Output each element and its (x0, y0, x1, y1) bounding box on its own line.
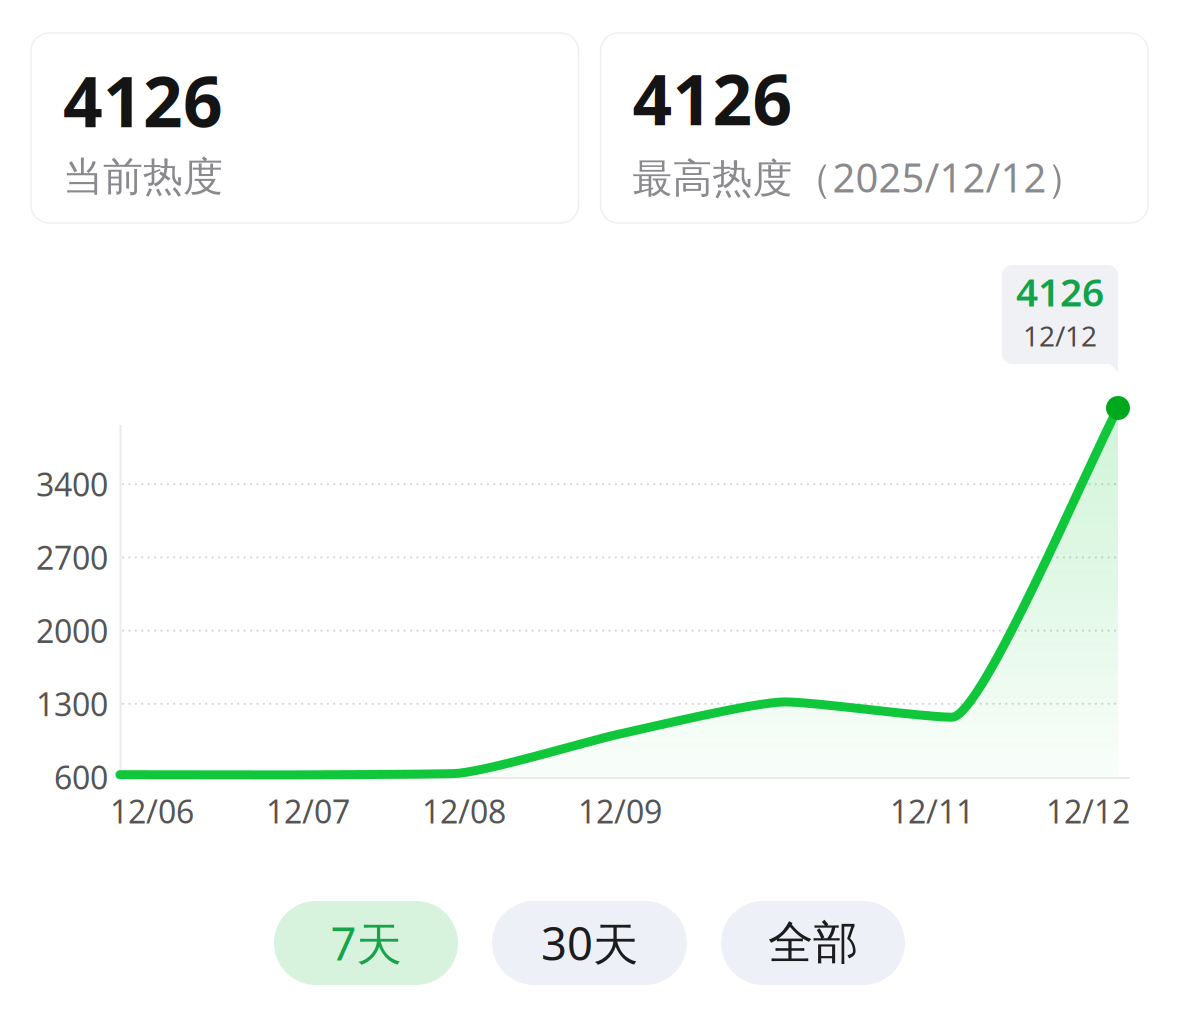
staticText: 最高热度（2025/12/12） (632, 150, 1086, 204)
staticText: 600 (54, 756, 108, 798)
staticText: 30天 (541, 913, 638, 973)
staticText: 3400 (36, 463, 108, 505)
staticText: 12/07 (266, 790, 350, 832)
staticText: 4126 (1016, 266, 1104, 317)
staticText: 全部 (768, 915, 858, 971)
staticText: 当前热度 (63, 152, 223, 202)
button[interactable]: 7天 (274, 901, 458, 985)
staticText: 4126 (632, 52, 792, 144)
staticText: 12/11 (890, 790, 974, 832)
staticText: 1300 (36, 683, 108, 725)
staticText: 12/08 (422, 790, 506, 832)
staticText: 12/12 (1046, 790, 1130, 832)
staticText: 12/12 (1023, 317, 1097, 354)
staticText: 2000 (36, 609, 108, 652)
button[interactable]: 30天 (492, 901, 687, 985)
staticText: 7天 (330, 913, 401, 973)
staticText: 4126 (63, 54, 223, 146)
staticText: 12/09 (578, 790, 662, 832)
staticText: 2700 (36, 536, 108, 579)
button[interactable]: 全部 (721, 901, 905, 985)
staticText: 12/06 (110, 790, 194, 832)
